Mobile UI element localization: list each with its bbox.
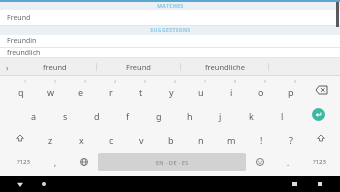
staticText: 5 <box>144 79 147 84</box>
staticText: 3 <box>84 79 87 84</box>
button[interactable]: Backspace <box>306 78 336 102</box>
staticText: h <box>187 110 193 122</box>
button[interactable]: ! <box>246 126 276 150</box>
staticText: g <box>156 110 162 122</box>
button[interactable]: x <box>66 126 96 150</box>
staticText: Freund <box>126 62 151 72</box>
staticText: y <box>169 86 174 98</box>
staticText: 6 <box>174 79 177 84</box>
button[interactable]: Emoji <box>246 150 274 174</box>
button[interactable]: EN · DE · ES <box>98 153 246 171</box>
button[interactable]: 9 <box>246 78 276 102</box>
button[interactable]: 7 <box>186 78 216 102</box>
staticText: MATCHES <box>157 3 184 10</box>
button[interactable]: a <box>18 102 50 126</box>
button[interactable]: Freund <box>97 58 180 76</box>
button[interactable]: m <box>216 126 246 150</box>
staticText: b <box>168 134 174 146</box>
button[interactable]: v <box>126 126 156 150</box>
staticText: , <box>54 157 57 168</box>
button[interactable]: Screenshot <box>312 176 328 192</box>
button[interactable]: k <box>236 102 267 126</box>
button[interactable]: freundliche <box>181 58 268 76</box>
staticText: ?123 <box>313 158 326 166</box>
staticText: w <box>47 86 55 98</box>
staticText: freundliche <box>205 62 245 72</box>
staticText: f <box>126 110 130 122</box>
button[interactable]: ?123 <box>6 150 41 174</box>
staticText: 4 <box>114 79 117 84</box>
button[interactable]: Shift <box>306 126 336 150</box>
button[interactable]: Freundin <box>0 35 340 48</box>
staticText: r <box>109 86 113 98</box>
staticText: a <box>31 110 37 122</box>
staticText: ?123 <box>17 158 30 166</box>
button[interactable]: c <box>96 126 126 150</box>
button[interactable]: Expand suggestions <box>0 58 14 76</box>
button[interactable]: 5 <box>126 78 156 102</box>
staticText: 0 <box>294 79 297 84</box>
button[interactable]: , <box>41 150 70 174</box>
staticText: e <box>78 86 84 98</box>
button[interactable]: 0 <box>276 78 306 102</box>
staticText: m <box>227 134 236 146</box>
button[interactable]: Freund <box>0 10 340 26</box>
button[interactable]: s <box>50 102 81 126</box>
staticText: j <box>219 110 222 122</box>
staticText: freundlich <box>7 48 41 57</box>
button[interactable]: 4 <box>96 78 126 102</box>
staticText: p <box>288 86 294 98</box>
button[interactable]: 6 <box>156 78 186 102</box>
button[interactable]: b <box>156 126 186 150</box>
button[interactable]: l <box>267 102 298 126</box>
staticText: i <box>230 86 233 98</box>
staticText: v <box>139 134 144 146</box>
staticText: 1 <box>24 79 27 84</box>
button[interactable]: 1 <box>6 78 36 102</box>
button[interactable]: 3 <box>66 78 96 102</box>
button[interactable]: n <box>186 126 216 150</box>
staticText: Freund <box>7 13 31 23</box>
staticText: k <box>249 110 254 122</box>
staticText: u <box>198 86 204 98</box>
staticText: l <box>281 110 284 122</box>
staticText: 7 <box>204 79 207 84</box>
button[interactable]: j <box>205 102 236 126</box>
staticText: 9 <box>264 79 267 84</box>
button[interactable]: h <box>174 102 205 126</box>
button[interactable]: freundlich <box>0 48 340 58</box>
staticText: q <box>18 86 24 98</box>
staticText: s <box>63 110 68 122</box>
staticText: › <box>6 62 9 73</box>
button[interactable]: Recent apps <box>286 176 302 192</box>
staticText: SUGGESTIONS <box>150 27 191 34</box>
staticText: 2 <box>54 79 57 84</box>
button[interactable]: f <box>112 102 143 126</box>
staticText: z <box>48 134 53 146</box>
button[interactable]: Change keyboard language <box>70 150 98 174</box>
button[interactable]: d <box>81 102 112 126</box>
button[interactable]: Hide keyboard <box>12 176 28 192</box>
button[interactable]: Shift <box>4 126 35 150</box>
staticText: freund <box>43 62 67 72</box>
button[interactable]: g <box>143 102 174 126</box>
button[interactable]: Home <box>36 176 52 192</box>
button[interactable]: 8 <box>216 78 246 102</box>
button[interactable]: freund <box>14 58 96 76</box>
staticText: EN · DE · ES <box>156 159 189 166</box>
staticText: Freundin <box>7 36 37 46</box>
staticText: ? <box>289 134 293 146</box>
staticText: n <box>198 134 204 146</box>
button[interactable]: . <box>274 150 302 174</box>
staticText: d <box>94 110 100 122</box>
button[interactable]: ?123 <box>302 150 336 174</box>
staticText: o <box>258 86 264 98</box>
staticText: t <box>139 86 143 98</box>
staticText: ! <box>260 134 263 146</box>
button[interactable]: z <box>35 126 66 150</box>
staticText: 8 <box>234 79 237 84</box>
button[interactable]: Enter <box>301 102 335 126</box>
staticText: c <box>109 134 114 146</box>
button[interactable]: 2 <box>36 78 66 102</box>
button[interactable]: ? <box>276 126 306 150</box>
